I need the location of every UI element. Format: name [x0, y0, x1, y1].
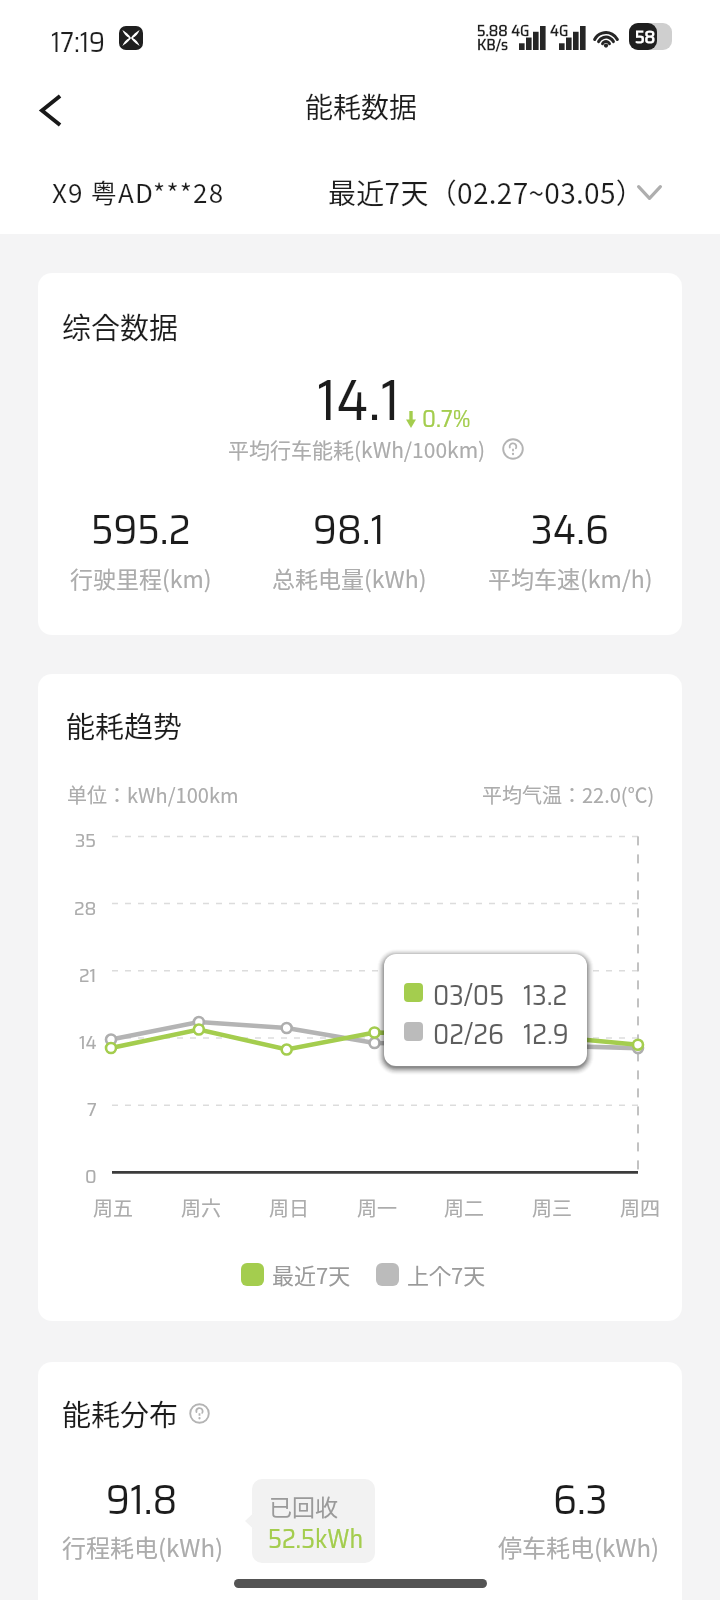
staticText: 12.9 — [523, 1012, 569, 1056]
staticText: 7 — [87, 1093, 97, 1124]
staticText: 91.8 — [106, 1466, 178, 1532]
staticText: 周四 — [620, 1193, 660, 1222]
staticText: 能耗数据 — [305, 86, 418, 127]
staticText: 已回收 — [269, 1489, 338, 1522]
staticText: 周二 — [444, 1193, 484, 1222]
staticText: 最近7天（02.27~03.05） — [328, 172, 645, 213]
staticText: 595.2 — [91, 496, 191, 562]
staticText: 28 — [74, 892, 97, 923]
staticText: 14 — [79, 1026, 97, 1057]
staticText: 98.1 — [313, 496, 385, 562]
staticText: 0 — [85, 1160, 97, 1191]
staticText: KB/s — [477, 32, 508, 57]
staticText: 能耗趋势 — [66, 704, 183, 746]
staticText: 周日 — [269, 1193, 309, 1222]
staticText: 行驶里程(km) — [70, 561, 212, 594]
staticText: 停车耗电(kWh) — [498, 1529, 660, 1564]
staticText: 4G — [550, 18, 569, 43]
staticText: 能耗分布 — [62, 1392, 179, 1434]
staticText: 周六 — [181, 1193, 221, 1222]
staticText: 52.5kWh — [268, 1518, 364, 1559]
staticText: 总耗电量(kWh) — [272, 561, 427, 594]
staticText: 最近7天 — [272, 1258, 351, 1290]
staticText: 平均行车能耗(kWh/100km) — [228, 434, 486, 464]
button[interactable]: 最近7天（02.27~03.05） — [316, 164, 682, 221]
staticText: 0.7% — [422, 400, 471, 438]
staticText: 03/05 — [433, 973, 505, 1017]
staticText: 上个7天 — [407, 1258, 486, 1290]
staticText: 单位：kWh/100km — [67, 780, 239, 809]
staticText: X9 粤AD***28 — [52, 173, 225, 211]
staticText: 周三 — [532, 1193, 572, 1222]
staticText: 周一 — [357, 1193, 397, 1222]
staticText: 02/26 — [433, 1012, 504, 1056]
staticText: 综合数据 — [62, 305, 179, 347]
staticText: 平均车速(km/h) — [488, 561, 653, 594]
staticText: 平均气温：22.0(℃) — [482, 780, 655, 809]
staticText: 34.6 — [531, 496, 609, 562]
staticText: 6.3 — [553, 1466, 608, 1532]
staticText: 5.88 4G — [477, 18, 530, 43]
staticText: 14.1 — [317, 354, 400, 445]
staticText: 21 — [79, 959, 97, 990]
staticText: 行程耗电(kWh) — [62, 1529, 224, 1564]
staticText: 13.2 — [523, 973, 568, 1017]
button[interactable]: Back — [17, 76, 85, 144]
staticText: 58 — [635, 23, 656, 50]
staticText: 35 — [75, 824, 97, 855]
staticText: 17:19 — [51, 20, 105, 64]
staticText: 周五 — [93, 1193, 133, 1222]
